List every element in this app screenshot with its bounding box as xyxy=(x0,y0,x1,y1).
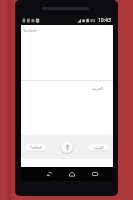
button[interactable]: Back xyxy=(42,167,56,181)
button[interactable]: العربية xyxy=(88,143,109,152)
button[interactable]: Speak xyxy=(60,140,74,154)
staticText: العربية xyxy=(92,86,103,91)
staticText: 3G xyxy=(90,18,96,23)
button[interactable]: Recent apps xyxy=(88,167,102,181)
staticText: العربية xyxy=(94,146,104,150)
staticText: Turkish xyxy=(30,145,42,150)
staticText: 10:43 xyxy=(98,17,111,24)
button[interactable]: Home xyxy=(65,167,79,181)
staticText: Turkish xyxy=(23,28,37,33)
button[interactable]: Turkish xyxy=(25,143,46,152)
